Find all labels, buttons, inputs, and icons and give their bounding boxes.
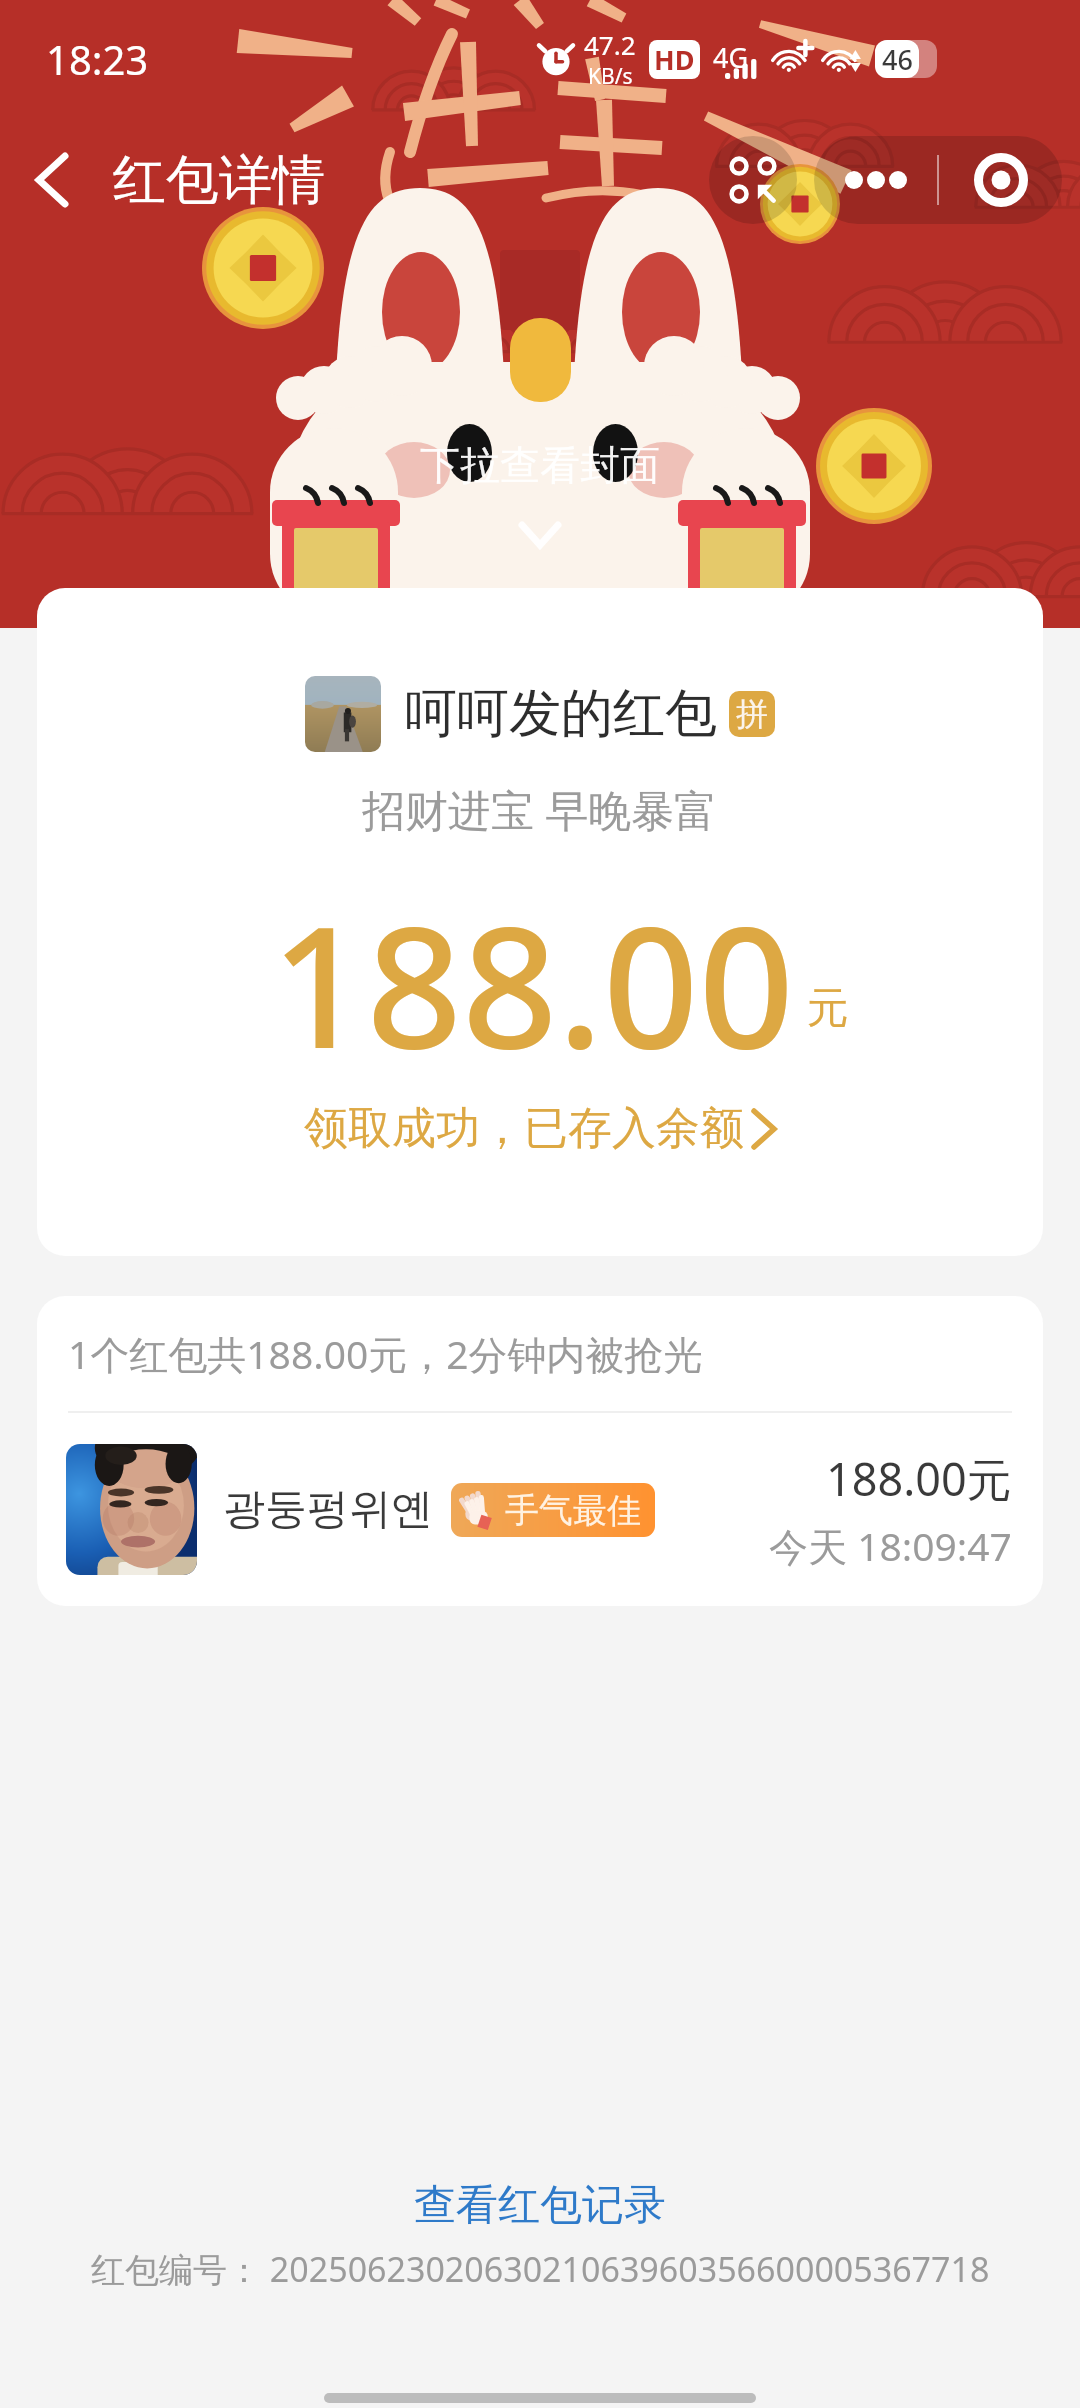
staticText: 광둥펑위옌 — [223, 1483, 433, 1536]
button[interactable]: 返回 — [0, 128, 104, 232]
button[interactable]: 领取成功，已存入余额 — [280, 1093, 800, 1164]
staticText: 红包编号： 2025062302063021063960356600005367… — [91, 2246, 990, 2292]
button[interactable]: 更多 — [814, 136, 937, 224]
staticText: 46 — [882, 41, 913, 78]
button[interactable]: 小程序 — [709, 136, 797, 224]
staticText: 18:23 — [46, 32, 149, 86]
staticText: 查看红包记录 — [414, 2179, 666, 2232]
staticText: 拼 — [736, 694, 768, 734]
staticText: 招财进宝 早晚暴富 — [362, 780, 718, 839]
staticText: 呵呵发的红包 — [405, 681, 717, 747]
staticText: 47.2 — [584, 27, 636, 62]
staticText: 今天 18:09:47 — [769, 1519, 1012, 1572]
staticText: 红包详情 — [113, 147, 325, 214]
staticText: 188.00元 — [826, 1448, 1012, 1509]
staticText: 下拉查看封面 — [420, 440, 660, 490]
staticText: HD — [654, 41, 695, 78]
staticText: 188.00 — [271, 869, 795, 1069]
staticText: 元 — [807, 982, 849, 1035]
staticText: 4G — [713, 39, 749, 76]
button[interactable]: 광둥펑위옌 — [37, 1413, 1043, 1606]
button[interactable]: 查看红包记录 — [374, 2167, 706, 2244]
staticText: 领取成功，已存入余额 — [304, 1101, 744, 1156]
staticText: 手气最佳 — [505, 1489, 641, 1532]
button[interactable]: 关闭 — [939, 136, 1062, 224]
staticText: 1个红包共188.00元，2分钟内被抢光 — [68, 1327, 703, 1380]
staticText: KB/s — [588, 62, 633, 91]
